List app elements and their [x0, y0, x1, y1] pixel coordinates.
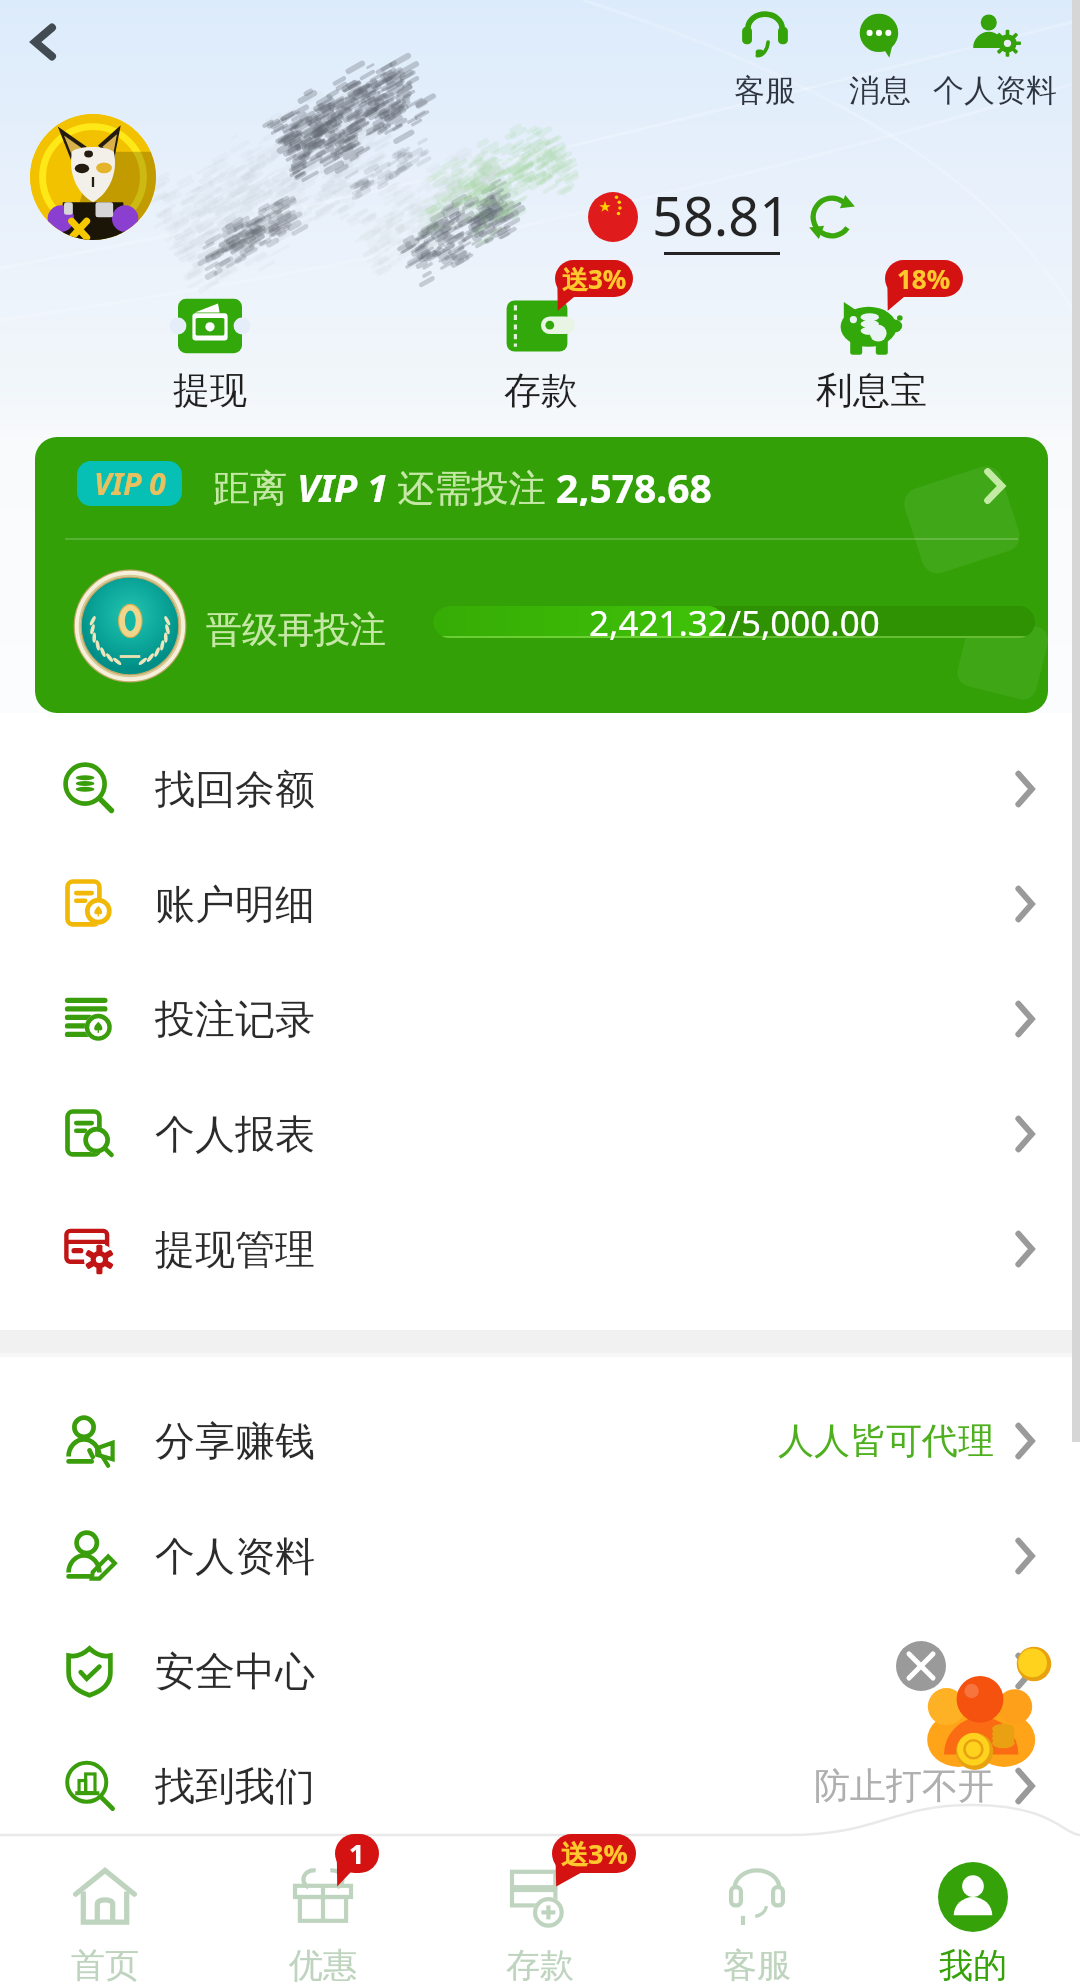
staticText: 客服 — [734, 71, 796, 110]
staticText: 投注记录 — [155, 994, 315, 1044]
staticText: 2,578.68 — [556, 461, 712, 506]
staticText: 我的 — [939, 1944, 1007, 1987]
button[interactable]: 送3% — [435, 1862, 645, 1987]
button[interactable]: 客服 — [685, 10, 845, 110]
button[interactable]: 个人资料 — [0, 1498, 1080, 1613]
staticText: VIP 0 — [94, 463, 166, 504]
button[interactable]: 消息 — [800, 10, 960, 110]
staticText: 1 — [349, 1835, 365, 1872]
staticText: 还需投注 — [388, 461, 556, 506]
button[interactable]: 首页 — [0, 1862, 210, 1987]
staticText: 提现 — [173, 367, 247, 414]
staticText: 58.81 — [652, 178, 791, 252]
button[interactable]: 找到我们 — [0, 1728, 1080, 1843]
button[interactable]: 投注记录 — [0, 961, 1080, 1076]
button[interactable]: 客服 — [652, 1862, 862, 1987]
staticText: 优惠 — [289, 1944, 357, 1987]
staticText: 防止打不开 — [814, 1763, 994, 1808]
button[interactable]: Refresh — [805, 190, 859, 244]
staticText: 2,421.32/5,000.00 — [589, 599, 880, 645]
staticText: 客服 — [723, 1944, 791, 1987]
staticText: 安全中心 — [155, 1646, 315, 1696]
staticText: 提现管理 — [155, 1224, 315, 1274]
button[interactable]: Close promotion — [896, 1641, 946, 1691]
staticText: 个人报表 — [155, 1109, 315, 1159]
button[interactable]: 送3% — [411, 286, 671, 414]
button[interactable]: 个人资料 — [915, 10, 1075, 110]
button[interactable]: 我的 — [868, 1862, 1078, 1987]
staticText: 找回余额 — [155, 764, 315, 814]
staticText: 送3% — [562, 261, 627, 297]
button[interactable]: 1 — [218, 1862, 428, 1987]
staticText: 送3% — [561, 1835, 628, 1872]
staticText: 个人资料 — [933, 71, 1057, 110]
staticText: 18% — [897, 261, 951, 296]
staticText: 利息宝 — [816, 367, 927, 414]
staticText: 个人资料 — [155, 1531, 315, 1581]
staticText: VIP 1 — [297, 461, 388, 506]
button[interactable]: 个人报表 — [0, 1076, 1080, 1191]
staticText: 存款 — [506, 1944, 574, 1987]
button[interactable]: 提现 — [80, 286, 340, 414]
staticText: 消息 — [849, 71, 911, 110]
button[interactable]: Avatar — [30, 114, 156, 240]
button[interactable]: Back — [8, 6, 80, 78]
button[interactable]: VIP 0 — [35, 437, 1048, 713]
staticText: 首页 — [71, 1944, 139, 1987]
staticText: 晋级再投注 — [206, 607, 386, 652]
button[interactable]: 提现管理 — [0, 1191, 1080, 1306]
button[interactable]: 18% — [741, 286, 1001, 414]
button[interactable]: 分享赚钱 — [0, 1383, 1080, 1498]
staticText: 找到我们 — [155, 1761, 315, 1811]
button[interactable]: 账户明细 — [0, 846, 1080, 961]
staticText: 距离 — [213, 461, 297, 506]
staticText: 账户明细 — [155, 879, 315, 929]
staticText: 人人皆可代理 — [778, 1418, 994, 1463]
button[interactable]: 找回余额 — [0, 731, 1080, 846]
staticText: 分享赚钱 — [155, 1416, 315, 1466]
staticText: 存款 — [504, 367, 578, 414]
button[interactable]: 安全中心 — [0, 1613, 1080, 1728]
